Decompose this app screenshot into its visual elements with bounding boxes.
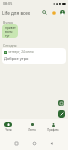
button[interactable]: привет всем тут xyxy=(2,24,18,38)
button[interactable]: Bonuses xyxy=(49,8,58,17)
staticText: четверг, 24 июня xyxy=(8,50,34,54)
staticText: 08:05 xyxy=(3,1,13,6)
button[interactable]: Чаты xyxy=(0,122,17,132)
button[interactable]: New message xyxy=(58,110,65,118)
staticText: Чаты xyxy=(5,128,12,132)
button[interactable]: Back xyxy=(46,138,56,148)
button[interactable]: Профиль xyxy=(44,122,62,132)
button[interactable]: Home xyxy=(29,138,39,148)
button[interactable]: Profile xyxy=(58,8,67,17)
staticText: Профиль xyxy=(47,128,59,132)
button[interactable]: Recents xyxy=(11,138,21,148)
button[interactable]: Search xyxy=(40,8,49,17)
button[interactable]: New group xyxy=(58,100,64,106)
staticText: привет всем тут xyxy=(5,26,16,38)
staticText: Доброе утро xyxy=(4,56,29,61)
staticText: Вчера xyxy=(3,20,13,25)
button[interactable]: Лента xyxy=(23,122,41,132)
staticText: Сегодня xyxy=(3,43,17,48)
button[interactable]: четверг, 24 июня xyxy=(2,48,66,64)
staticText: Лента xyxy=(28,128,36,132)
staticText: Life для всех xyxy=(2,10,30,16)
